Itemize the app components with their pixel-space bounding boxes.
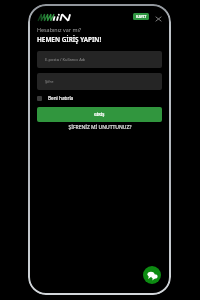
button[interactable]: Canlı destek [143,266,161,284]
button[interactable]: KAYIT [133,13,149,20]
button[interactable]: Kapat [151,12,165,26]
button[interactable]: Beni hatırla [37,95,74,101]
button[interactable]: GİRİŞ [37,107,162,122]
staticText: Beni hatırla [48,95,74,101]
staticText: HEMEN GİRİŞ YAPIN! [37,35,102,44]
button[interactable]: E-posta / Kullanıcı Adı [37,51,162,68]
button[interactable]: ŞİFRENİZ Mİ UNUTTUNUZ? [37,124,162,131]
staticText: Şifre [45,79,54,84]
staticText: E-posta / Kullanıcı Adı [45,57,86,62]
staticText: Hesabınız var mı? [37,26,82,33]
staticText: GİRİŞ [94,112,105,117]
staticText: KAYIT [136,14,147,19]
button[interactable]: Şifre [37,73,162,90]
staticText: ŞİFRENİZ Mİ UNUTTUNUZ? [68,124,132,131]
